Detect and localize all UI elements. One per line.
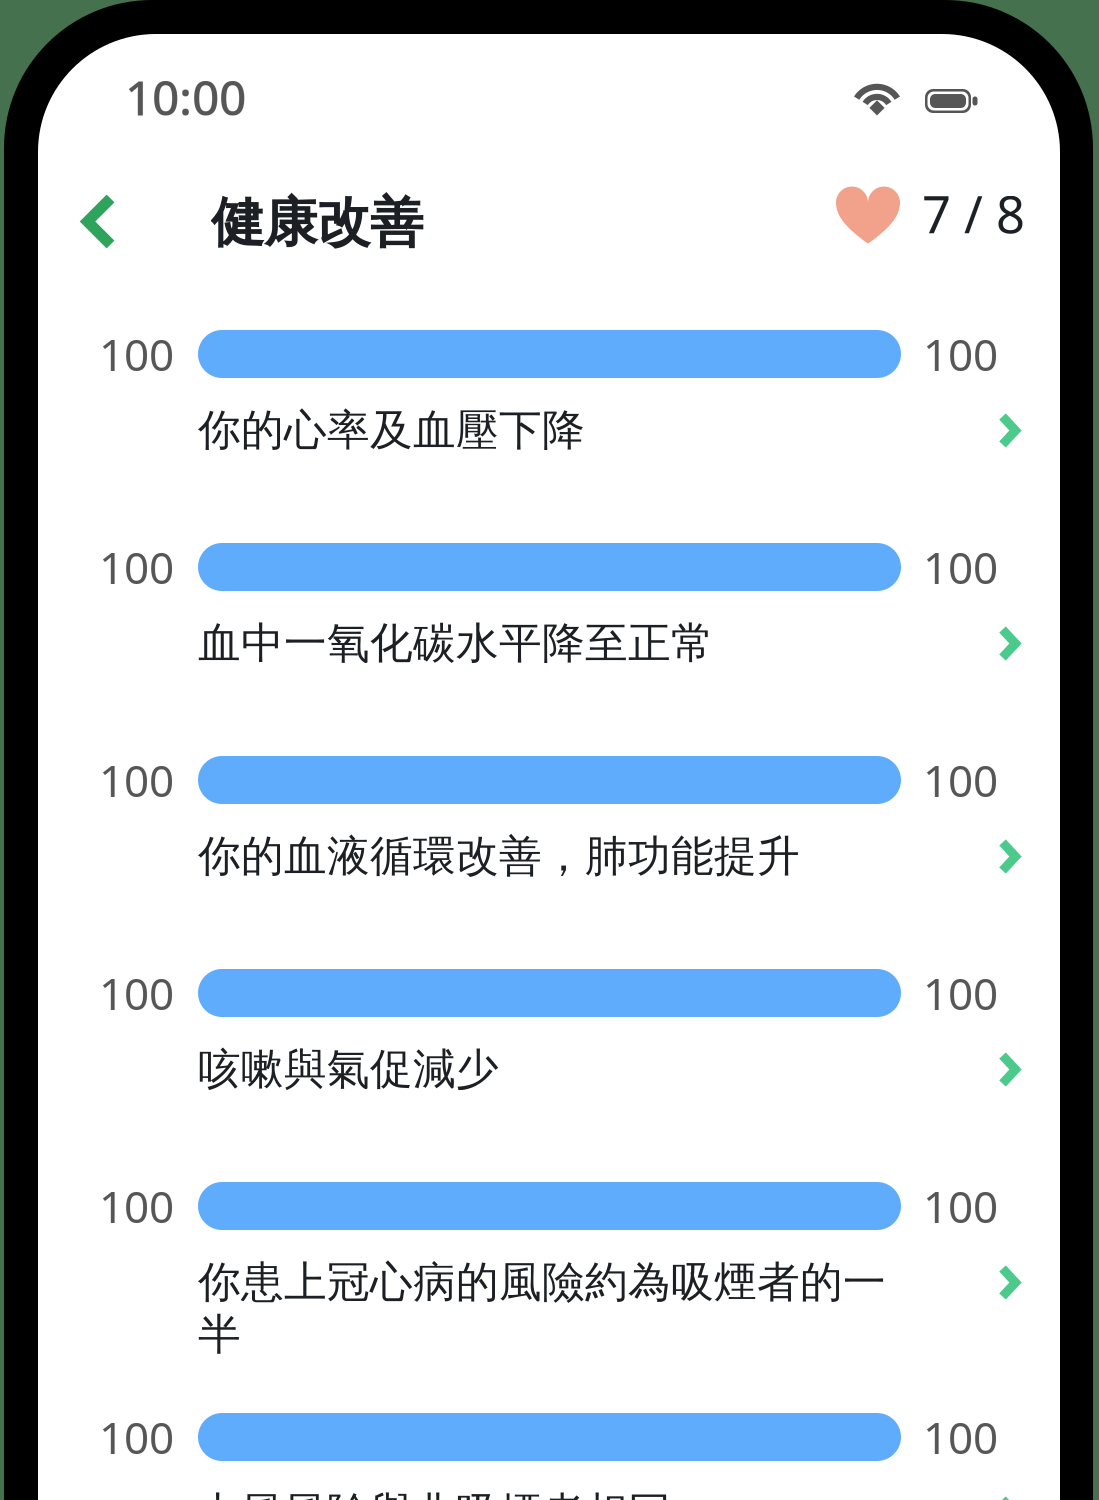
staticText: 血中一氧化碳水平降至正常: [198, 617, 714, 669]
button[interactable]: 100: [38, 1182, 1060, 1361]
button[interactable]: 100: [38, 756, 1060, 882]
button[interactable]: Back: [58, 173, 140, 270]
staticText: 10:00: [125, 65, 246, 129]
staticText: 健康改善: [211, 190, 423, 255]
staticText: 100: [923, 325, 998, 383]
staticText: 100: [923, 964, 998, 1022]
staticText: 100: [99, 1408, 174, 1466]
staticText: 你患上冠心病的風險約為吸煙者的一半: [198, 1256, 886, 1361]
staticText: 中風風險與非吸煙者相同: [198, 1487, 671, 1500]
staticText: 100: [923, 1177, 998, 1235]
staticText: 7 / 8: [922, 180, 1025, 247]
staticText: 你的血液循環改善，肺功能提升: [198, 830, 800, 882]
staticText: 100: [99, 1177, 174, 1235]
button[interactable]: 100: [38, 543, 1060, 669]
staticText: 你的心率及血壓下降: [198, 404, 585, 456]
button[interactable]: 100: [38, 330, 1060, 456]
staticText: 100: [99, 538, 174, 596]
staticText: 100: [99, 751, 174, 809]
staticText: 100: [99, 325, 174, 383]
button[interactable]: 100: [38, 969, 1060, 1095]
staticText: 咳嗽與氣促減少: [198, 1043, 499, 1095]
staticText: 100: [923, 1408, 998, 1466]
staticText: 100: [923, 751, 998, 809]
button[interactable]: 100: [38, 1413, 1060, 1500]
staticText: 100: [923, 538, 998, 596]
staticText: 100: [99, 964, 174, 1022]
